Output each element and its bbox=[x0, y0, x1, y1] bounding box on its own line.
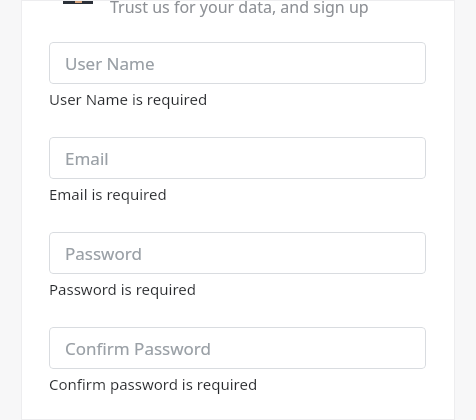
staticText: Confirm Password bbox=[65, 337, 211, 360]
staticText: Password is required bbox=[49, 279, 197, 299]
button[interactable]: Email bbox=[49, 137, 426, 179]
button[interactable]: User Name bbox=[49, 42, 426, 84]
staticText: Password bbox=[65, 242, 142, 265]
staticText: Confirm password is required bbox=[49, 374, 258, 394]
staticText: User Name bbox=[65, 52, 155, 75]
staticText: User Name is required bbox=[49, 89, 208, 109]
staticText: Trust us for your data, and sign up bbox=[110, 0, 369, 18]
staticText: Email bbox=[65, 147, 109, 170]
button[interactable]: Password bbox=[49, 232, 426, 274]
staticText: Email is required bbox=[49, 184, 167, 204]
button[interactable]: Confirm Password bbox=[49, 327, 426, 369]
